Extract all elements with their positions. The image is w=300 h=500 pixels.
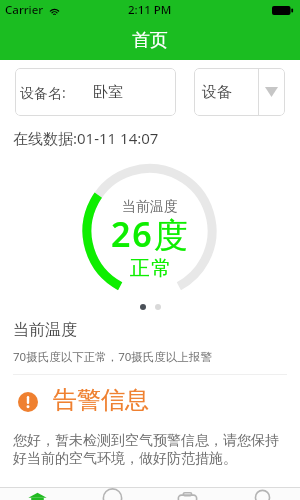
- staticText: 在线数据:01-11 14:07: [13, 128, 159, 148]
- button[interactable]: Profile: [225, 488, 300, 500]
- staticText: 设备名:: [20, 83, 66, 102]
- staticText: 告警信息: [53, 385, 149, 415]
- staticText: 您好，暂未检测到空气预警信息，请您保持好当前的空气环境，做好防范措施。: [13, 432, 289, 467]
- button[interactable]: Home: [0, 488, 75, 500]
- staticText: 设备: [202, 83, 232, 102]
- staticText: 当前温度: [13, 320, 77, 340]
- staticText: 正常: [129, 256, 172, 281]
- staticText: Carrier: [5, 2, 44, 18]
- button[interactable]: 告警信息: [18, 389, 149, 419]
- staticText: 卧室: [93, 83, 123, 102]
- button[interactable]: 设备名:: [15, 68, 176, 116]
- staticText: 26度: [111, 211, 190, 257]
- button[interactable]: Devices: [150, 488, 225, 500]
- button[interactable]: 设备: [194, 68, 285, 116]
- staticText: 70摄氏度以下正常，70摄氏度以上报警: [13, 349, 212, 365]
- staticText: 首页: [132, 29, 168, 52]
- staticText: 当前温度: [122, 198, 178, 216]
- staticText: 2:11 PM: [128, 2, 172, 18]
- button[interactable]: Discover: [75, 488, 150, 500]
